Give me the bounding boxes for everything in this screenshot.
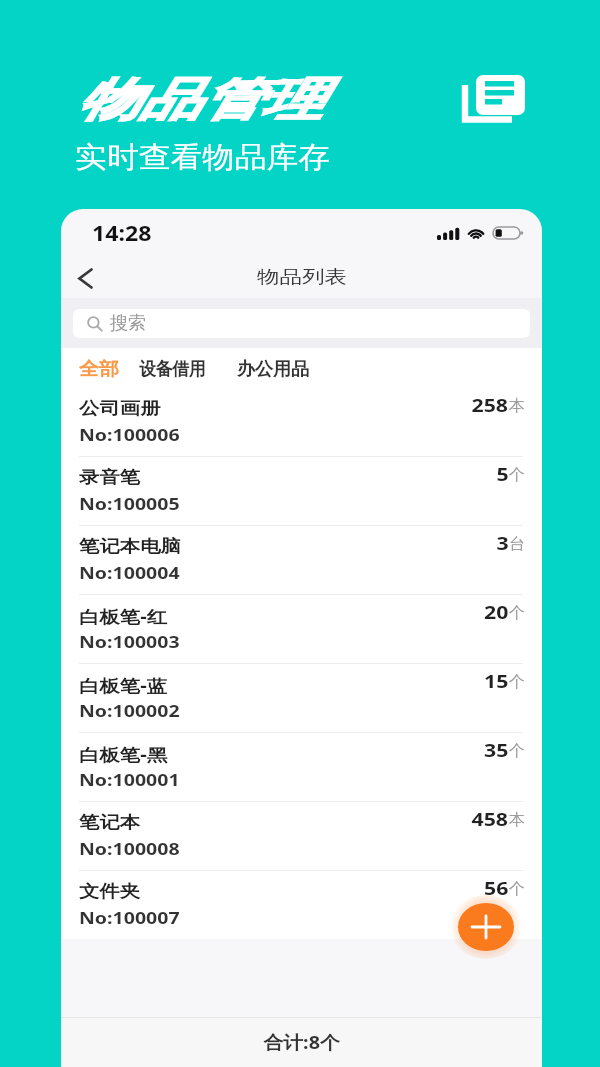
button[interactable]: 设备借用 xyxy=(139,358,211,381)
staticText: 个 xyxy=(509,465,525,485)
staticText: No:100001 xyxy=(79,769,180,791)
button[interactable]: 白板笔-蓝 xyxy=(61,664,542,733)
staticText: 白板笔-黑 xyxy=(79,743,168,766)
staticText: 5 xyxy=(496,463,509,486)
staticText: 公司画册 xyxy=(79,398,161,419)
button[interactable]: 全部 xyxy=(79,358,115,381)
staticText: 笔记本电脑 xyxy=(79,536,181,557)
staticText: 258 xyxy=(471,394,509,417)
staticText: 文件夹 xyxy=(79,881,140,902)
staticText: 个 xyxy=(509,603,525,623)
staticText: 搜索 xyxy=(110,312,146,335)
button[interactable]: 办公用品 xyxy=(237,358,309,381)
staticText: No:100002 xyxy=(79,700,180,722)
staticText: 物品管理 xyxy=(78,72,323,129)
staticText: No:100008 xyxy=(79,838,180,860)
staticText: 个 xyxy=(509,879,525,899)
button[interactable]: 搜索 xyxy=(87,309,530,338)
staticText: 个 xyxy=(509,741,525,761)
staticText: 合计:8个 xyxy=(263,1030,340,1055)
staticText: No:100003 xyxy=(79,631,180,653)
staticText: 物品列表 xyxy=(257,266,347,289)
button[interactable]: 物品列表 xyxy=(457,67,533,143)
button[interactable]: 白板笔-黑 xyxy=(61,733,542,802)
staticText: No:100005 xyxy=(79,493,180,515)
button[interactable]: 公司画册 xyxy=(61,388,542,457)
staticText: No:100006 xyxy=(79,424,180,446)
staticText: 458 xyxy=(471,808,509,831)
staticText: No:100007 xyxy=(79,907,180,929)
staticText: 3 xyxy=(496,532,509,555)
staticText: No:100004 xyxy=(79,562,180,584)
staticText: 实时查看物品库存 xyxy=(75,139,330,176)
button[interactable]: 返回 xyxy=(68,261,102,295)
button[interactable]: 白板笔-红 xyxy=(61,595,542,664)
staticText: 白板笔-蓝 xyxy=(79,674,168,697)
button[interactable]: 笔记本 xyxy=(61,802,542,871)
button[interactable]: 文件夹 xyxy=(61,871,542,939)
staticText: 个 xyxy=(509,672,525,692)
staticText: 本 xyxy=(509,810,525,830)
staticText: 台 xyxy=(509,534,525,554)
button[interactable]: 录音笔 xyxy=(61,457,542,526)
staticText: 本 xyxy=(509,396,525,416)
staticText: 56 xyxy=(484,877,509,900)
staticText: 35 xyxy=(484,739,509,762)
button[interactable]: 添加 xyxy=(458,903,514,951)
staticText: 录音笔 xyxy=(79,467,140,488)
staticText: 白板笔-红 xyxy=(79,605,168,628)
staticText: 14:28 xyxy=(92,219,151,248)
staticText: 15 xyxy=(484,670,509,693)
staticText: 20 xyxy=(484,601,509,624)
button[interactable]: 笔记本电脑 xyxy=(61,526,542,595)
staticText: 笔记本 xyxy=(79,812,140,833)
